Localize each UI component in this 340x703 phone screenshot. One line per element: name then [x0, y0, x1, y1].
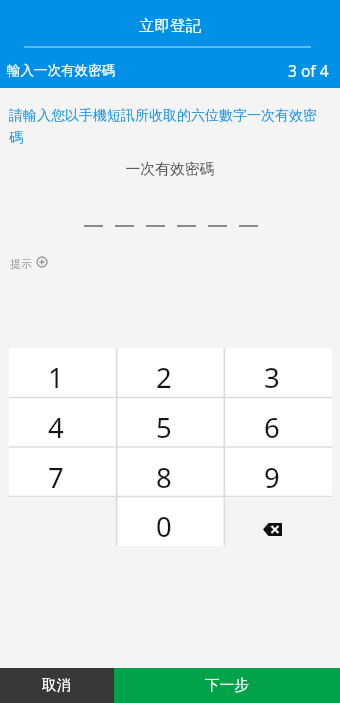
button[interactable]: 7	[9, 448, 117, 498]
button[interactable]: 9	[225, 448, 332, 498]
button[interactable]: 取消	[0, 668, 114, 703]
button[interactable]: 下一步	[114, 668, 340, 703]
button[interactable]: 2	[117, 348, 225, 398]
button[interactable]: 0	[117, 498, 225, 546]
button[interactable]: 4	[9, 398, 117, 448]
button[interactable]: 6	[225, 398, 332, 448]
staticText: 提示	[10, 257, 32, 271]
other: Hint	[36, 256, 48, 268]
staticText: 7	[48, 459, 64, 496]
staticText: 4	[48, 409, 64, 446]
button[interactable]: 1	[9, 348, 117, 398]
button[interactable]: 提示	[10, 257, 49, 271]
staticText: 8	[156, 459, 172, 496]
button[interactable]: 5	[117, 398, 225, 448]
staticText: 1	[48, 359, 64, 396]
staticText: 立即登記	[139, 16, 201, 36]
staticText: 請輸入您以手機短訊所收取的六位數字一次有效密碼	[9, 107, 323, 146]
staticText: 2	[156, 359, 172, 396]
button[interactable]: 8	[117, 448, 225, 498]
staticText: 取消	[42, 676, 72, 695]
button[interactable]: Backspace	[225, 498, 332, 546]
staticText: 輸入一次有效密碼	[7, 62, 115, 79]
staticText: 下一步	[205, 676, 250, 695]
staticText: 9	[264, 459, 280, 496]
staticText: 一次有效密碼	[0, 160, 340, 179]
staticText: 0	[156, 508, 172, 545]
staticText: 3	[264, 359, 280, 396]
staticText: 3 of 4	[288, 60, 329, 81]
staticText: 5	[156, 409, 172, 446]
button[interactable]: 3	[225, 348, 332, 398]
staticText: 6	[264, 409, 280, 446]
